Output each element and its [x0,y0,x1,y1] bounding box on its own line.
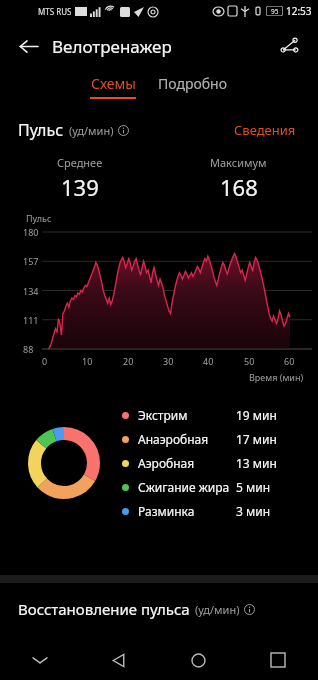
button[interactable]: Подробно [152,70,234,97]
staticText: Подробно [158,74,228,93]
staticText: 95 [271,7,279,16]
staticText: Велотренажер [52,35,172,58]
button[interactable]: Back [79,640,158,680]
button[interactable]: Экстрим [122,403,302,427]
staticText: 12:53 [286,4,312,18]
staticText: 0 [42,355,48,367]
staticText: 30 [163,355,174,367]
staticText: 88 [23,343,34,355]
staticText: Время (мин) [249,371,304,383]
button[interactable]: Home [158,640,238,680]
button[interactable]: Recents [238,640,318,680]
staticText: 19 мин [236,407,277,423]
staticText: Экстрим [138,407,188,423]
staticText: 168 [220,172,258,202]
staticText: Аэробная [138,455,195,471]
staticText: 13 мин [236,455,277,471]
button[interactable]: Разминка [122,499,302,523]
staticText: 50 [244,355,255,367]
staticText: Схемы [91,74,136,93]
staticText: (уд/мин) [69,123,114,138]
staticText: Максимум [210,155,267,170]
staticText: Разминка [138,503,195,519]
staticText: 5 мин [236,479,271,495]
staticText: 17 мин [236,431,277,447]
staticText: 139 [61,172,99,202]
staticText: Анаэробная [138,431,209,447]
staticText: 180 [23,226,39,238]
button[interactable]: Схемы [84,70,142,103]
staticText: 40 [203,355,214,367]
staticText: 3 мин [236,503,271,519]
button[interactable]: Аэробная [122,451,302,475]
staticText: 134 [23,285,39,297]
staticText: Пульс [18,119,64,141]
staticText: Восстановление пульса [18,599,190,619]
button[interactable]: Анаэробная [122,427,302,451]
staticText: MTS RUS [38,6,72,17]
button[interactable]: Hide keyboard [0,640,79,680]
staticText: 20 [123,355,134,367]
button[interactable]: Back [10,28,46,64]
staticText: 157 [23,255,39,267]
staticText: Среднее [57,155,103,170]
other: Info [118,125,129,136]
button[interactable]: Сведения [230,117,300,143]
staticText: 10 [82,355,93,367]
staticText: 60 [284,355,295,367]
button[interactable]: Восстановление пульса [18,599,300,619]
staticText: Сжигание жира [138,479,230,495]
staticText: Сведения [234,121,296,139]
button[interactable]: Сжигание жира [122,475,302,499]
staticText: 111 [23,314,39,326]
button[interactable]: Share [272,28,308,64]
staticText: Пульс [26,212,52,224]
staticText: (уд/мин) [195,602,240,617]
